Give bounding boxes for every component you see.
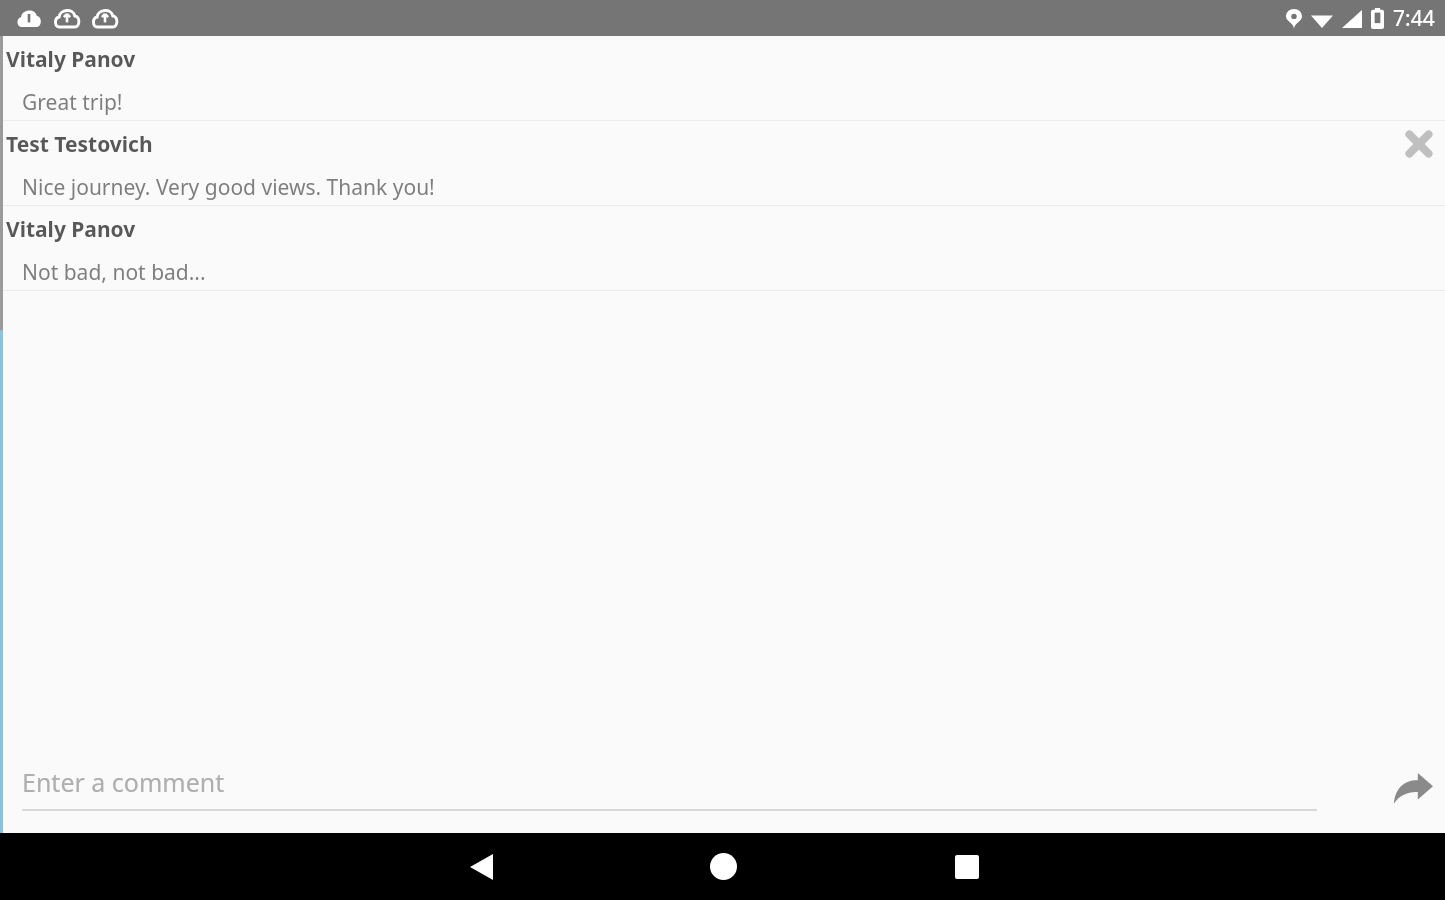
button[interactable]: Recent apps <box>931 833 1003 900</box>
button[interactable]: Test Testovich <box>0 121 1445 206</box>
staticText: Not bad, not bad... <box>22 258 206 287</box>
button[interactable]: Delete comment <box>1401 126 1437 162</box>
button[interactable]: Send comment <box>1381 756 1445 820</box>
staticText: Vitaly Panov <box>6 45 136 74</box>
staticText: 7:44 <box>1393 4 1435 33</box>
button[interactable]: Vitaly Panov <box>0 36 1445 121</box>
button[interactable]: Back <box>445 833 517 900</box>
staticText: Great trip! <box>22 88 123 117</box>
staticText: Enter a comment <box>22 765 225 799</box>
staticText: Vitaly Panov <box>6 215 136 244</box>
button[interactable]: Home <box>687 833 759 900</box>
button[interactable]: Vitaly Panov <box>0 206 1445 291</box>
staticText: Nice journey. Very good views. Thank you… <box>22 173 435 202</box>
staticText: Test Testovich <box>6 130 153 159</box>
